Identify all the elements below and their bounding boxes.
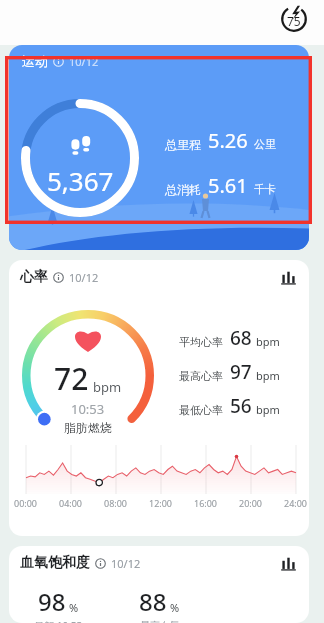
staticText: 75 — [287, 13, 301, 29]
staticText: bpm — [256, 368, 280, 383]
staticText: 5.26 — [208, 127, 248, 154]
button[interactable]: View history chart — [280, 269, 297, 286]
staticText: 56 — [230, 393, 252, 419]
staticText: 12:00 — [149, 497, 173, 509]
staticText: bpm — [256, 334, 280, 349]
staticText: 5,367 — [47, 163, 114, 198]
staticText: 08:00 — [104, 497, 128, 509]
staticText: 最高心率 — [179, 369, 223, 383]
staticText: 10:53 — [71, 400, 105, 418]
staticText: 脂肪燃烧 — [64, 420, 112, 435]
staticText: 最低心率 — [179, 403, 223, 417]
staticText: 最新:10:53 — [34, 619, 83, 623]
staticText: 72 — [54, 358, 89, 399]
staticText: 04:00 — [59, 497, 83, 509]
button[interactable]: 运动 — [9, 45, 309, 250]
staticText: 20:00 — [239, 497, 263, 509]
staticText: 16:00 — [194, 497, 218, 509]
button[interactable]: Battery 75 percent charging — [279, 4, 309, 34]
staticText: 97 — [230, 359, 252, 385]
staticText: 心率 — [20, 268, 48, 286]
staticText: 平均心率 — [179, 335, 223, 349]
staticText: bpm — [93, 378, 122, 396]
staticText: % — [170, 600, 180, 615]
staticText: 10/12 — [69, 270, 99, 285]
button[interactable]: 血氧饱和度 — [9, 546, 309, 623]
staticText: 98 — [38, 585, 66, 618]
staticText: 68 — [230, 325, 252, 351]
staticText: 运动 — [22, 53, 48, 69]
button[interactable]: View history chart — [280, 555, 297, 572]
staticText: % — [69, 600, 79, 615]
staticText: 00:00 — [14, 497, 38, 509]
staticText: 24:00 — [284, 497, 308, 509]
staticText: 10/12 — [69, 54, 99, 69]
staticText: 10/12 — [111, 556, 141, 571]
staticText: 千卡 — [254, 182, 276, 196]
staticText: 总消耗 — [165, 182, 201, 197]
staticText: 最高血氧 — [140, 619, 180, 623]
staticText: 血氧饱和度 — [20, 554, 90, 572]
staticText: 88 — [139, 585, 167, 618]
staticText: bpm — [256, 402, 280, 417]
staticText: 总里程 — [165, 137, 201, 152]
button[interactable]: 心率 — [9, 260, 309, 536]
staticText: 公里 — [254, 137, 276, 151]
staticText: 5.61 — [208, 172, 248, 199]
